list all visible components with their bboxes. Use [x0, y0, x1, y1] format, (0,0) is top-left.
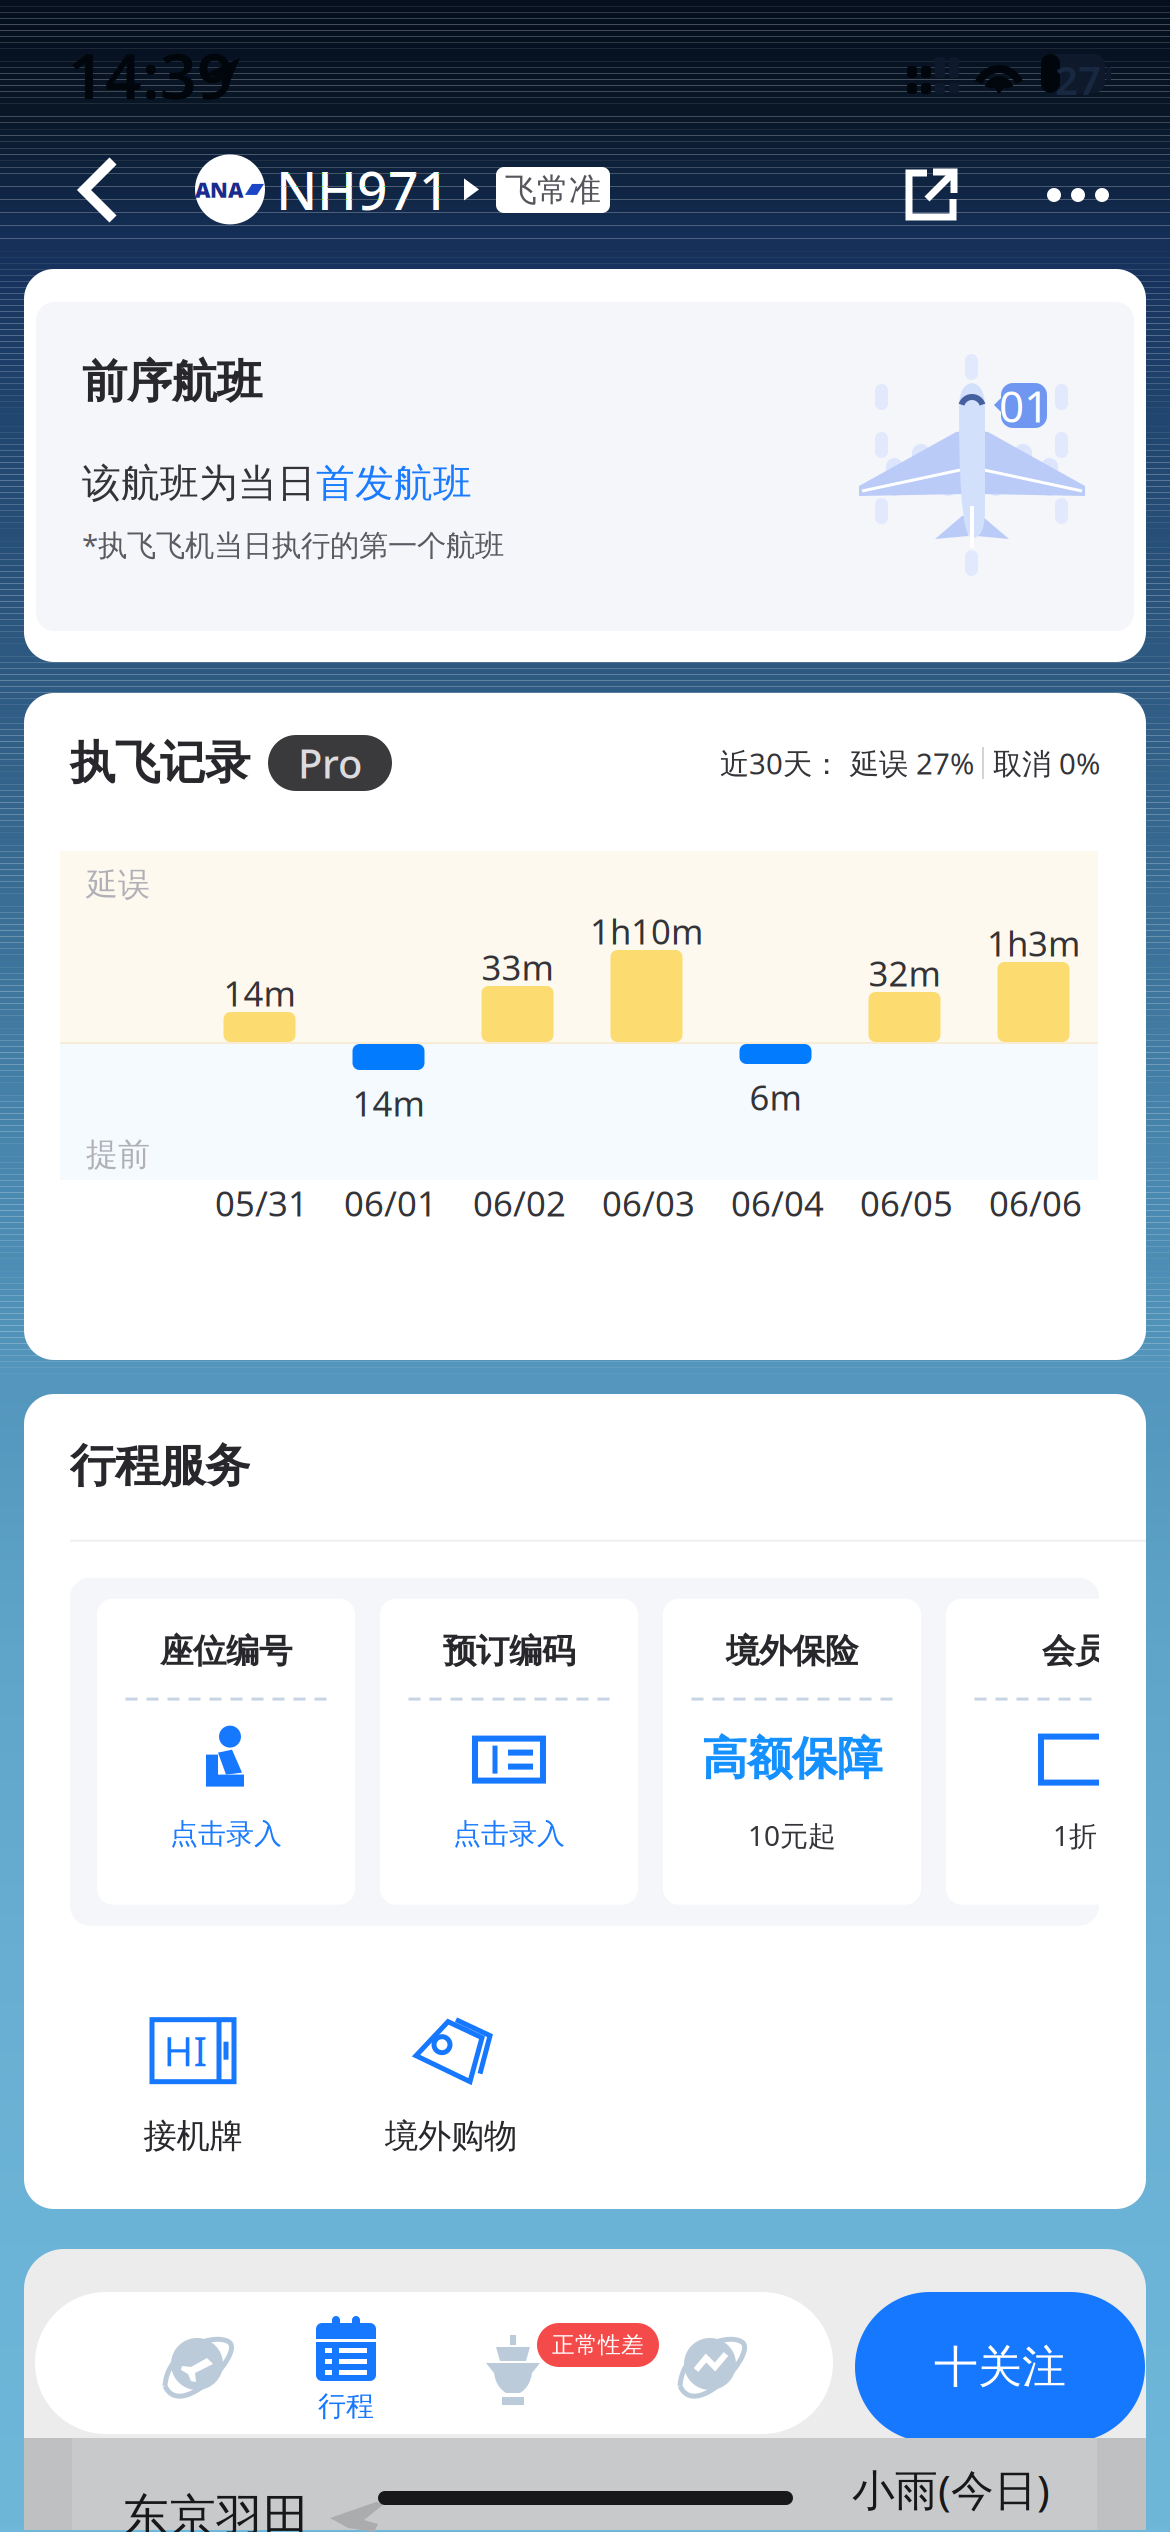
staticText: 1h10m: [590, 908, 703, 954]
staticText: 06/04: [731, 1180, 824, 1226]
staticText: 33m: [481, 944, 553, 990]
button[interactable]: ANA: [195, 142, 481, 237]
button[interactable]: 境外购物: [385, 2014, 517, 2157]
staticText: 行程: [318, 2389, 374, 2423]
staticText: Pro: [298, 736, 362, 789]
staticText: 十关注: [934, 2340, 1066, 2394]
staticText: 提前: [86, 1135, 150, 1174]
staticText: 06/03: [602, 1180, 695, 1226]
staticText: 行程服务: [70, 1438, 250, 1494]
button[interactable]: Pro: [268, 735, 392, 791]
button[interactable]: HI: [143, 2014, 242, 2157]
staticText: 05/31: [215, 1180, 308, 1226]
staticText: 点击录入: [453, 1817, 565, 1851]
staticText: 前序航班: [82, 354, 262, 410]
staticText: 32m: [868, 950, 940, 996]
staticText: 点击录入: [170, 1817, 282, 1851]
staticText: 预订编码: [443, 1631, 575, 1672]
staticText: 14m: [352, 1080, 424, 1126]
staticText: 正常性差: [552, 2331, 644, 2359]
staticText: 执飞记录: [70, 735, 250, 791]
staticText: 06/01: [344, 1180, 437, 1226]
staticText: 近30天： 延误 27%: [720, 743, 982, 782]
staticText: 14:39: [68, 32, 234, 117]
button[interactable]: Share: [881, 145, 981, 245]
staticText: 取消 0%: [984, 743, 1100, 782]
staticText: 1折: [1053, 1817, 1097, 1854]
button[interactable]: 正常性差: [454, 2292, 654, 2434]
staticText: 1h3m: [987, 920, 1080, 966]
button[interactable]: 行程: [289, 2292, 449, 2434]
staticText: 14m: [223, 970, 295, 1016]
staticText: 10元起: [748, 1817, 836, 1854]
staticText: 接机牌: [143, 2116, 242, 2157]
staticText: 01: [999, 376, 1049, 435]
button[interactable]: 十关注: [855, 2292, 1145, 2442]
staticText: 小雨(今日): [852, 2461, 1050, 2518]
staticText: 17°C / 24°C | 2000: [760, 2522, 1103, 2532]
button[interactable]: 预订编码: [380, 1599, 638, 1905]
staticText: ANA: [195, 175, 243, 203]
button[interactable]: More: [1023, 164, 1133, 226]
button[interactable]: 境外保险: [663, 1599, 921, 1905]
button[interactable]: 会员: [946, 1599, 1170, 1905]
staticText: 06/05: [860, 1180, 953, 1226]
button[interactable]: 航班动态: [117, 2292, 277, 2434]
button[interactable]: 更多: [649, 2292, 809, 2434]
button[interactable]: Back: [52, 129, 146, 251]
staticText: 6m: [749, 1074, 801, 1120]
staticText: 06/06: [989, 1180, 1082, 1226]
staticText: 会员: [1042, 1631, 1108, 1672]
button[interactable]: 飞常准: [496, 167, 610, 213]
staticText: 境外购物: [385, 2116, 517, 2157]
staticText: 高额保障: [702, 1731, 882, 1786]
staticText: NH971: [276, 154, 450, 225]
staticText: *执飞飞机当日执行的第一个航班: [82, 525, 504, 564]
staticText: 境外保险: [726, 1631, 858, 1672]
staticText: 延误: [86, 865, 150, 904]
staticText: 座位编号: [160, 1631, 292, 1672]
button[interactable]: 座位编号: [97, 1599, 355, 1905]
staticText: 27: [1055, 53, 1101, 106]
staticText: 飞常准: [505, 170, 601, 210]
staticText: 首发航班: [316, 460, 472, 507]
staticText: 东京羽田: [122, 2488, 310, 2532]
staticText: 06/02: [473, 1180, 566, 1226]
staticText: HI: [163, 2024, 207, 2077]
staticText: 该航班为当日: [82, 460, 316, 507]
